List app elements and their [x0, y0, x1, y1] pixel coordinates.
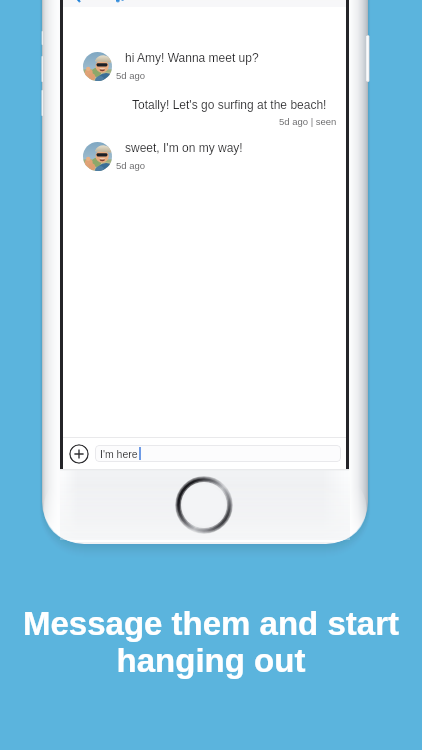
staticText: Totally! Let's go surfing at the beach!: [132, 98, 327, 111]
button[interactable]: Profile photo: [83, 52, 112, 81]
staticText: Message them and start hanging out: [23, 605, 399, 679]
button[interactable]: Profile photo: [83, 142, 112, 171]
button[interactable]: Back: [63, 0, 346, 7]
staticText: I'm here: [100, 448, 138, 460]
staticText: sweet, I'm on my way!: [125, 141, 243, 154]
staticText: 5d ago: [116, 70, 146, 81]
button[interactable]: I'm here: [95, 445, 341, 462]
staticText: 5d ago | seen: [279, 116, 337, 127]
staticText: 5d ago: [116, 160, 146, 171]
staticText: hi Amy! Wanna meet up?: [125, 51, 259, 64]
button[interactable]: Add attachment: [69, 444, 89, 464]
